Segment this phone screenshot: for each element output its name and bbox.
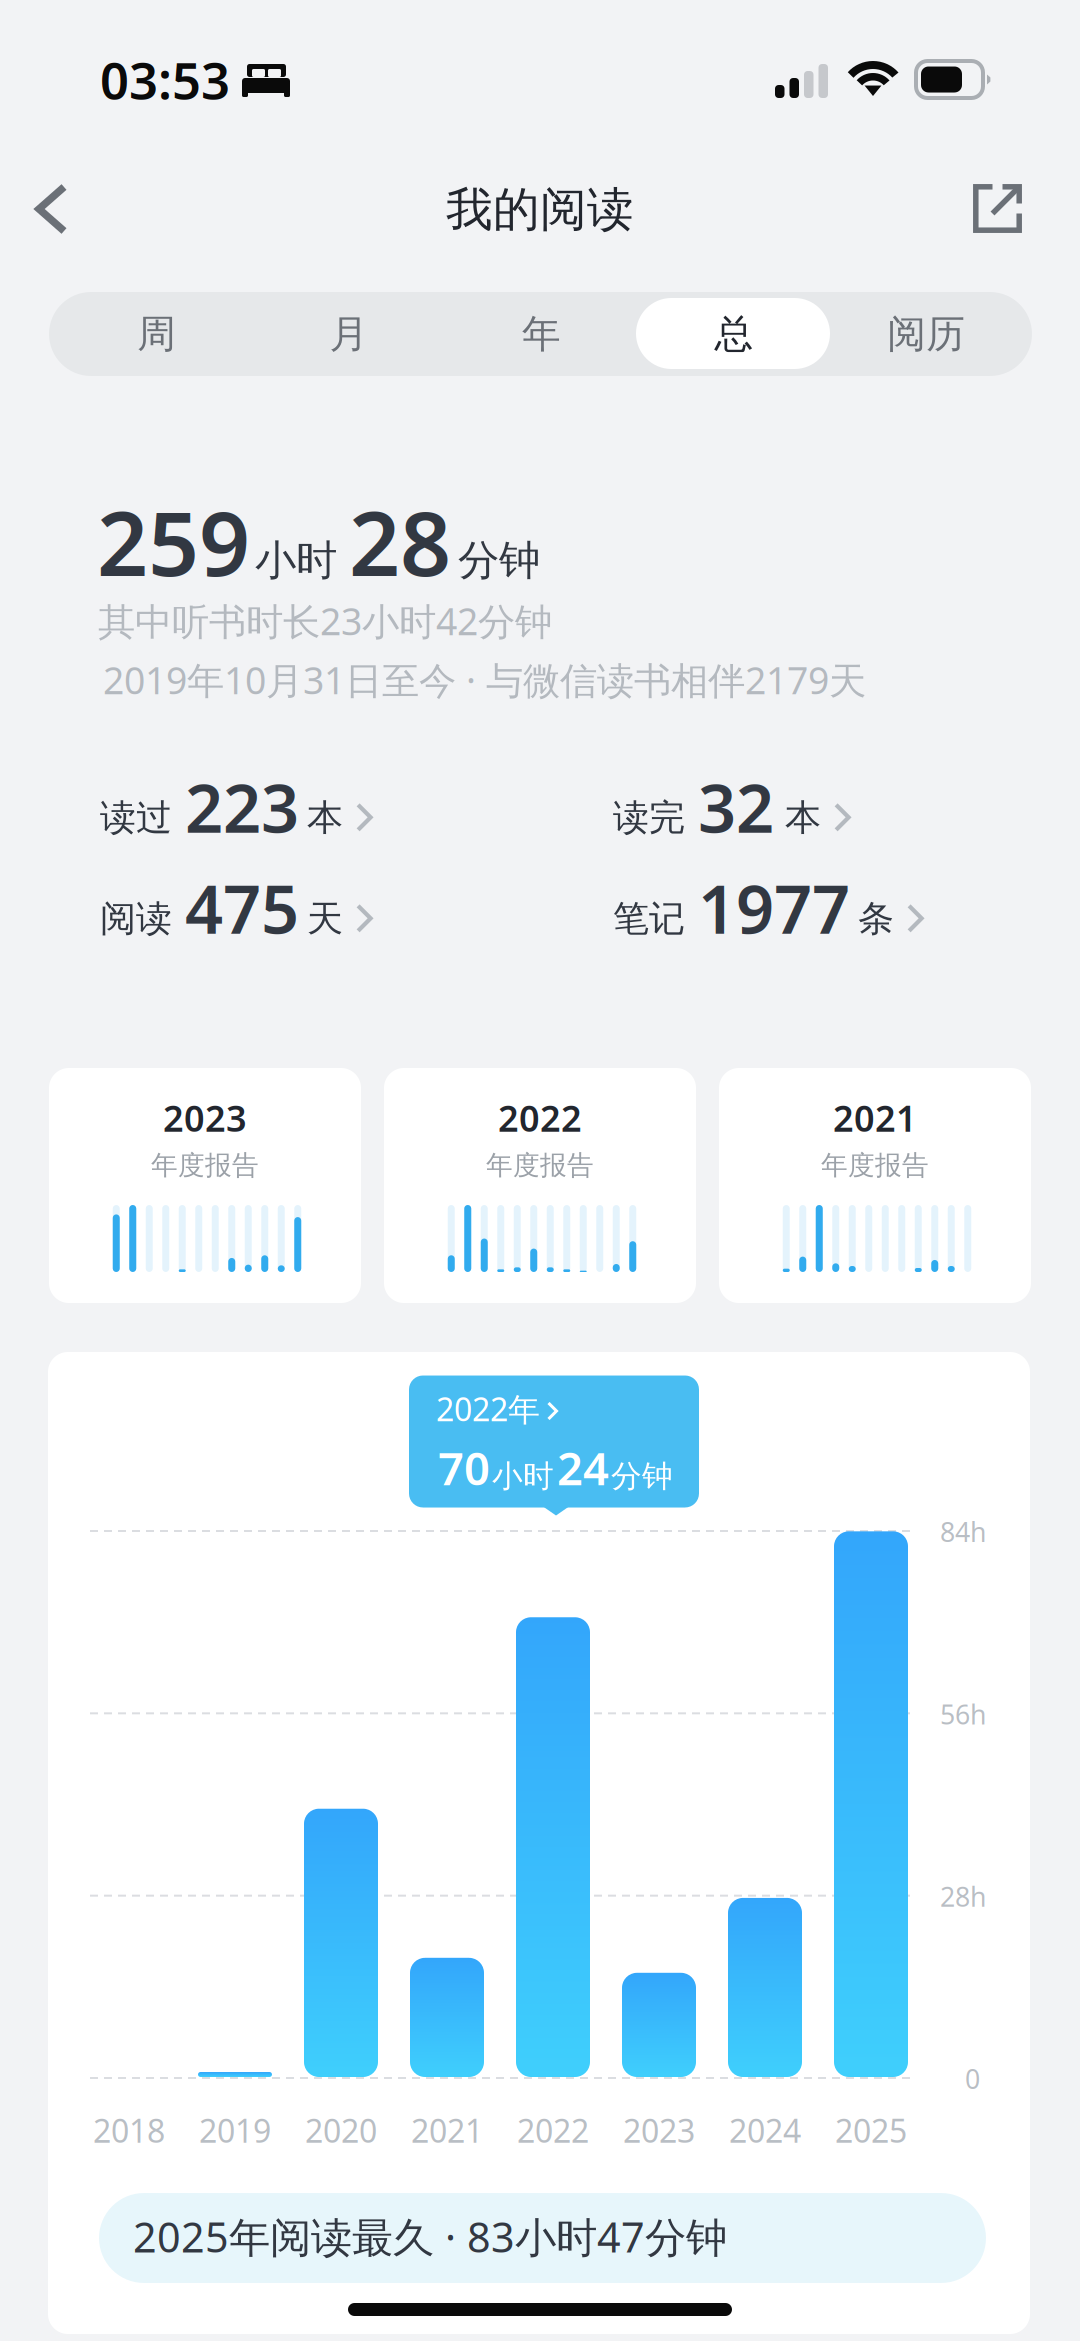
staticText: 我的阅读: [446, 181, 634, 238]
staticText: 32: [698, 763, 774, 851]
staticText: 2019: [199, 2109, 271, 2151]
staticText: 2021: [833, 1094, 917, 1142]
staticText: 2022: [517, 2109, 589, 2151]
staticText: 1977: [698, 864, 850, 952]
button[interactable]: 年: [445, 292, 638, 376]
staticText: 分钟: [611, 1457, 673, 1495]
staticText: 56h: [940, 1696, 986, 1732]
staticText: 条: [858, 897, 894, 941]
staticText: 259: [97, 482, 250, 601]
button[interactable]: 总: [638, 292, 830, 376]
staticText: 2018: [93, 2109, 165, 2151]
button[interactable]: 2025年阅读最久 · 83小时47分钟: [99, 2193, 986, 2283]
button[interactable]: 月: [253, 292, 445, 376]
staticText: 月: [330, 310, 369, 358]
staticText: 2025: [835, 2109, 907, 2151]
staticText: 24: [557, 1437, 609, 1498]
button[interactable]: 2023: [49, 1068, 361, 1303]
button[interactable]: 笔记: [613, 901, 944, 961]
staticText: 总: [714, 310, 753, 358]
staticText: 2020: [305, 2109, 377, 2151]
staticText: 其中听书时长23小时42分钟: [98, 596, 552, 646]
staticText: 475: [185, 864, 299, 952]
button[interactable]: 周: [60, 292, 253, 376]
staticText: 读过: [100, 796, 172, 840]
button[interactable]: 2022: [384, 1068, 696, 1303]
staticText: 2023: [623, 2109, 695, 2151]
button[interactable]: 返回: [0, 161, 96, 257]
staticText: 0: [965, 2061, 980, 2096]
staticText: 年: [522, 310, 561, 358]
staticText: 分钟: [458, 535, 540, 586]
staticText: 本: [785, 796, 821, 840]
staticText: 年度报告: [821, 1149, 929, 1182]
staticText: 年度报告: [486, 1149, 594, 1182]
staticText: 阅读: [100, 897, 172, 941]
staticText: 2022: [498, 1094, 582, 1142]
staticText: 2023: [163, 1094, 247, 1142]
staticText: 28: [349, 482, 451, 601]
staticText: 阅历: [887, 310, 965, 358]
staticText: 年度报告: [151, 1149, 259, 1182]
button[interactable]: 分享: [952, 161, 1056, 257]
staticText: 28h: [940, 1879, 986, 1914]
staticText: 天: [307, 897, 343, 941]
button[interactable]: 阅历: [830, 292, 1022, 376]
staticText: 2022年: [436, 1387, 540, 1430]
staticText: 小时: [492, 1457, 554, 1495]
button[interactable]: 2022年: [409, 1371, 699, 1512]
staticText: 笔记: [613, 897, 685, 941]
staticText: 84h: [940, 1514, 986, 1549]
staticText: 周: [137, 310, 176, 358]
staticText: 2021: [411, 2109, 483, 2151]
staticText: 03:53: [100, 46, 230, 113]
staticText: 读完: [613, 796, 685, 840]
staticText: 本: [307, 796, 343, 840]
button[interactable]: 读完: [613, 800, 871, 860]
staticText: 2024: [729, 2109, 801, 2151]
staticText: 2025年阅读最久 · 83小时47分钟: [133, 2209, 727, 2264]
button[interactable]: 读过: [100, 800, 393, 860]
staticText: 70: [438, 1437, 490, 1498]
staticText: 223: [185, 763, 299, 851]
staticText: 小时: [255, 535, 337, 586]
staticText: 2019年10月31日至今 · 与微信读书相伴2179天: [103, 655, 866, 705]
button[interactable]: 阅读: [100, 901, 393, 961]
button[interactable]: 2021: [719, 1068, 1031, 1303]
